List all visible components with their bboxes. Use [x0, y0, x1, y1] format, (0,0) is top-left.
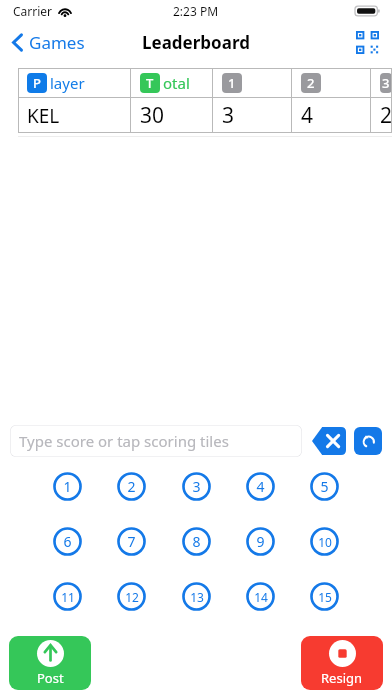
button[interactable]: 2 — [116, 471, 147, 502]
staticText: 1 — [63, 477, 72, 496]
staticText: 10 — [318, 534, 332, 550]
staticText: 13 — [190, 589, 204, 605]
staticText: otal — [163, 73, 190, 93]
staticText: 11 — [61, 589, 75, 605]
staticText: Carrier — [13, 3, 53, 19]
button[interactable]: Show QR code — [343, 24, 392, 61]
staticText: T — [146, 74, 154, 92]
staticText: layer — [50, 73, 85, 93]
button[interactable]: 10 — [309, 526, 340, 557]
staticText: 14 — [254, 589, 268, 605]
staticText: 4 — [256, 477, 265, 496]
staticText: Post — [37, 669, 64, 687]
staticText: 4 — [301, 101, 314, 130]
staticText: Games — [29, 31, 85, 54]
staticText: 15 — [318, 589, 332, 605]
staticText: 2 — [307, 74, 315, 92]
button[interactable]: 13 — [181, 581, 212, 612]
staticText: 1 — [228, 74, 236, 92]
staticText: 7 — [127, 532, 136, 551]
button[interactable]: Backspace — [312, 427, 346, 455]
staticText: 9 — [256, 532, 265, 551]
button[interactable]: Resign — [301, 636, 383, 690]
button[interactable]: 1 — [52, 471, 83, 502]
button[interactable]: Undo — [354, 427, 382, 455]
staticText: 3 — [192, 477, 201, 496]
staticText: 3 — [222, 101, 235, 130]
staticText: 3 — [382, 74, 390, 92]
staticText: 5 — [320, 477, 329, 496]
button[interactable]: 5 — [309, 471, 340, 502]
staticText: 6 — [63, 532, 72, 551]
button[interactable]: 9 — [245, 526, 276, 557]
button[interactable]: Type score or tap scoring tiles — [10, 425, 302, 457]
button[interactable]: 4 — [245, 471, 276, 502]
button[interactable]: 6 — [52, 526, 83, 557]
button[interactable]: 15 — [309, 581, 340, 612]
button[interactable]: 3 — [181, 471, 212, 502]
staticText: 12 — [125, 589, 139, 605]
button[interactable]: 11 — [52, 581, 83, 612]
staticText: 2:23 PM — [173, 3, 219, 19]
button[interactable]: 8 — [181, 526, 212, 557]
staticText: 2 — [127, 477, 136, 496]
staticText: P — [33, 74, 41, 92]
staticText: KEL — [27, 103, 60, 129]
staticText: 30 — [140, 101, 165, 130]
button[interactable]: Games — [0, 25, 95, 60]
button[interactable]: 12 — [116, 581, 147, 612]
staticText: 8 — [192, 532, 201, 551]
staticText: Leaderboard — [142, 31, 250, 54]
button[interactable]: 7 — [116, 526, 147, 557]
staticText: Resign — [321, 669, 363, 687]
button[interactable]: 14 — [245, 581, 276, 612]
staticText: Type score or tap scoring tiles — [19, 431, 229, 451]
staticText: 2 — [380, 101, 392, 130]
button[interactable]: Post — [9, 636, 91, 690]
